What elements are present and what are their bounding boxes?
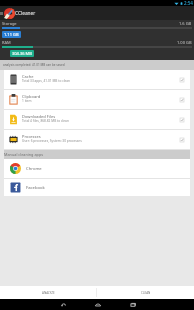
staticText: 1.11 GB <box>4 32 19 37</box>
staticText: 304.36 MB <box>12 51 32 56</box>
staticText: 1.6 GB <box>179 21 192 26</box>
staticText: Clipboard <box>22 94 41 99</box>
button[interactable]: Clipboard <box>4 90 190 109</box>
button[interactable]: Processes <box>4 130 190 149</box>
staticText: CLEAN <box>141 291 151 295</box>
button[interactable]: CLEAN <box>97 286 194 299</box>
staticText: RAM <box>2 40 11 45</box>
staticText: Total 33 apps, 41.01 MB to clean <box>22 79 71 83</box>
staticText: Cache <box>22 74 34 79</box>
staticText: CCleaner <box>15 10 36 17</box>
button[interactable]: Cache <box>4 70 190 89</box>
staticText: 1 item <box>22 99 32 103</box>
staticText: 1.00 GB <box>177 40 192 45</box>
staticText: ANALYZE <box>42 291 55 295</box>
button[interactable]: Home <box>80 299 115 310</box>
staticText: 2:54 <box>184 0 193 6</box>
button[interactable]: Open navigation drawer <box>0 6 3 20</box>
staticText: User: 6 processes, System: 30 processes <box>22 139 82 143</box>
staticText: Facebook <box>26 185 45 191</box>
button[interactable]: Facebook <box>4 179 190 196</box>
staticText: Processes <box>22 134 41 139</box>
button[interactable]: ANALYZE <box>0 286 96 299</box>
staticText: Manual cleaning apps <box>4 152 44 157</box>
button[interactable]: Chrome <box>4 159 190 178</box>
staticText: Chrome <box>26 166 42 172</box>
button[interactable]: Recent apps <box>115 299 150 310</box>
staticText: analysis completed: 41.01 MB can be save… <box>3 63 65 67</box>
button[interactable]: Downloaded Files <box>4 110 190 129</box>
staticText: Storage <box>2 21 17 26</box>
staticText: Total 4 files, 868.82 MB to clean <box>22 119 69 123</box>
button[interactable]: Back <box>45 299 80 310</box>
staticText: Downloaded Files <box>22 114 56 119</box>
